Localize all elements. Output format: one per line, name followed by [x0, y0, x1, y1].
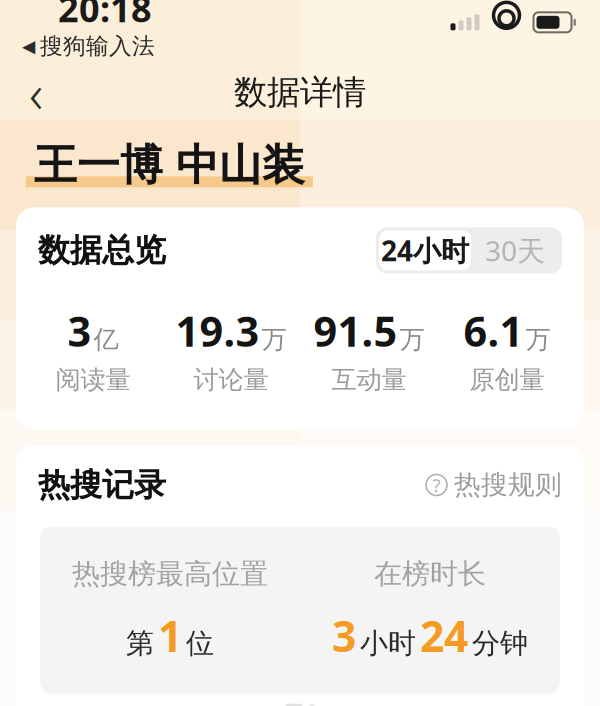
staticText: 热搜规则: [454, 469, 562, 501]
staticText: 20:18: [58, 0, 152, 32]
button[interactable]: Back: [8, 64, 64, 120]
staticText: 互动量: [331, 364, 406, 395]
button[interactable]: 24小时: [379, 230, 471, 270]
staticText: 搜狗输入法: [40, 32, 155, 60]
staticText: ◀: [22, 36, 35, 56]
staticText: 原创量: [469, 364, 544, 395]
staticText: 热搜榜最高位置: [72, 557, 268, 591]
staticText: 30天: [485, 232, 545, 269]
staticText: 数据总览: [38, 231, 166, 270]
button[interactable]: 30天: [471, 230, 559, 270]
staticText: 讨论量: [193, 364, 268, 395]
staticText: 19.3: [175, 303, 259, 358]
staticText: 万: [525, 324, 550, 355]
staticText: 数据详情: [234, 72, 366, 113]
staticText: 91.5: [313, 303, 397, 358]
staticText: 王一博 中山装: [34, 139, 305, 191]
button[interactable]: ?: [426, 469, 562, 501]
staticText: 热搜记录: [38, 465, 166, 505]
staticText: 1: [158, 607, 182, 664]
staticText: 24小时: [381, 232, 469, 269]
staticText: 分钟: [472, 626, 528, 661]
staticText: 6.1: [463, 303, 523, 358]
staticText: ‹: [29, 57, 43, 128]
staticText: 小时: [360, 626, 416, 661]
staticText: 万: [261, 324, 286, 355]
staticText: 万: [399, 324, 424, 355]
staticText: 位: [186, 626, 214, 661]
staticText: 在榜时长: [374, 557, 486, 591]
staticText: 3: [332, 607, 356, 664]
staticText: 第: [126, 626, 154, 661]
staticText: ?: [432, 473, 440, 497]
staticText: 阅读量: [55, 364, 130, 395]
staticText: 24: [420, 607, 468, 664]
staticText: 3: [67, 303, 91, 358]
staticText: 亿: [93, 324, 118, 355]
